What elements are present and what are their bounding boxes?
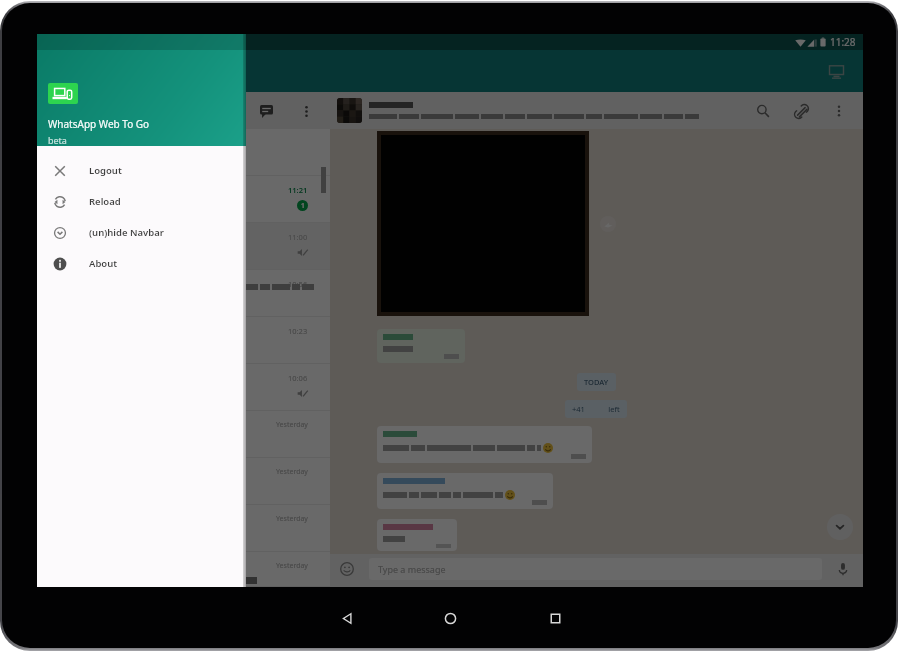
staticText: beta xyxy=(48,134,67,146)
button[interactable]: Back xyxy=(331,602,363,634)
button[interactable]: Yesterday xyxy=(37,505,330,552)
staticText: +41 left xyxy=(572,404,620,414)
button[interactable]: Yesterday xyxy=(37,552,330,587)
button[interactable]: Scroll to bottom xyxy=(827,514,853,540)
button[interactable]: Reload xyxy=(37,186,246,217)
button[interactable]: TODAY xyxy=(584,377,609,387)
button[interactable]: 11:21 xyxy=(37,176,330,223)
staticText: Reload xyxy=(89,195,121,208)
button[interactable]: 10:56 xyxy=(37,270,330,317)
button[interactable]: Yesterday xyxy=(37,411,330,458)
staticText: Logout xyxy=(89,164,122,177)
staticText: Yesterday xyxy=(276,561,308,571)
button[interactable]: Logout xyxy=(37,155,246,186)
button[interactable]: Recents xyxy=(539,602,571,634)
staticText: Yesterday xyxy=(276,467,308,477)
button[interactable]: 11:00 xyxy=(37,223,330,270)
button[interactable]: Search xyxy=(753,101,773,121)
staticText: 10:56 xyxy=(288,279,308,289)
staticText: Yesterday xyxy=(276,420,308,430)
button[interactable] xyxy=(377,473,553,509)
button[interactable]: Emoji xyxy=(338,560,356,578)
button[interactable]: (un)hide Navbar xyxy=(37,217,246,248)
staticText: (un)hide Navbar xyxy=(89,226,164,239)
staticText: 1 xyxy=(301,201,305,210)
button[interactable]: Forward xyxy=(600,216,616,232)
button[interactable]: Home xyxy=(434,602,466,634)
staticText: 11:00 xyxy=(288,232,308,242)
staticText: Yesterday xyxy=(276,514,308,524)
staticText: About xyxy=(89,257,118,270)
staticText: 11:21 xyxy=(288,185,308,195)
staticText: 10:23 xyxy=(288,326,308,336)
staticText: TODAY xyxy=(584,377,609,387)
button[interactable]: Cast to desktop xyxy=(824,59,848,83)
button[interactable] xyxy=(377,426,592,463)
button[interactable]: 10:06 xyxy=(37,364,330,411)
staticText: WhatsApp Web To Go xyxy=(48,117,150,131)
button[interactable]: Menu xyxy=(296,101,316,121)
button[interactable]: +41 left xyxy=(572,404,620,414)
staticText: Type a message xyxy=(378,563,446,575)
button[interactable]: Voice message xyxy=(834,560,852,578)
staticText: 11:28 xyxy=(830,35,856,49)
button[interactable] xyxy=(377,519,457,551)
button[interactable]: 10:23 xyxy=(37,317,330,364)
button[interactable] xyxy=(37,129,330,176)
button[interactable]: Attach xyxy=(791,101,811,121)
button[interactable]: New chat xyxy=(256,101,276,121)
button[interactable]: Type a message xyxy=(369,558,822,580)
button[interactable]: Yesterday xyxy=(37,458,330,505)
button[interactable]: More options xyxy=(829,101,849,121)
button[interactable]: About xyxy=(37,248,246,279)
staticText: 10:06 xyxy=(288,373,308,383)
